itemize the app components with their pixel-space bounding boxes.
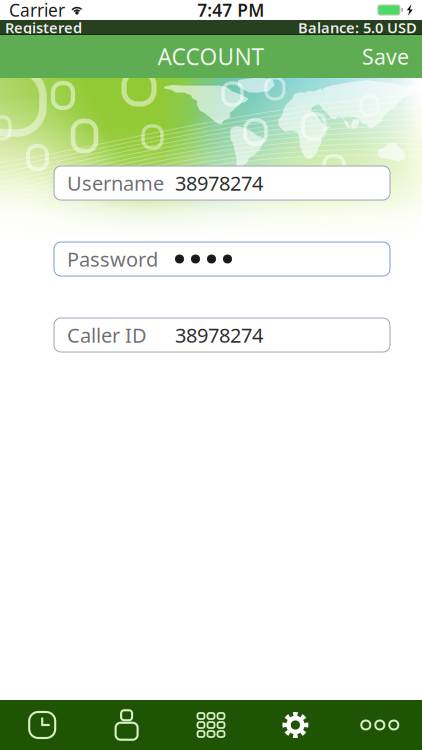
staticText: Save bbox=[362, 42, 409, 71]
staticText: Balance: 5.0 USD bbox=[298, 18, 417, 37]
button[interactable]: Save bbox=[349, 35, 422, 78]
staticText: Carrier bbox=[9, 0, 65, 21]
button[interactable]: Keypad bbox=[169, 700, 253, 749]
staticText: 7:47 PM bbox=[197, 0, 264, 21]
staticText: 38978274 bbox=[175, 322, 263, 348]
staticText: ACCOUNT bbox=[157, 41, 264, 71]
button[interactable]: Settings bbox=[253, 700, 338, 749]
button[interactable]: Recents bbox=[0, 700, 84, 749]
button[interactable]: Caller ID bbox=[54, 318, 390, 352]
staticText: 38978274 bbox=[175, 170, 263, 196]
staticText: Password bbox=[67, 246, 158, 272]
button[interactable]: Password bbox=[54, 242, 390, 276]
staticText: Username bbox=[67, 170, 164, 196]
staticText: Registered bbox=[5, 18, 82, 37]
button[interactable]: More bbox=[338, 700, 422, 749]
staticText: Caller ID bbox=[67, 322, 147, 348]
button[interactable]: Contacts bbox=[84, 700, 169, 749]
button[interactable]: Username bbox=[54, 166, 390, 200]
